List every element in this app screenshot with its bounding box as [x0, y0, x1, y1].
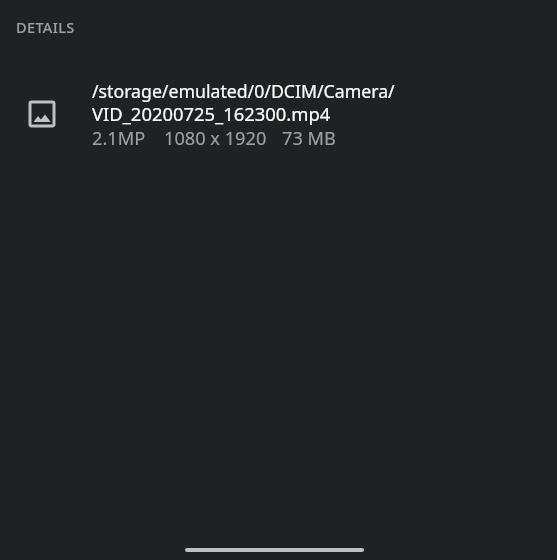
staticText: VID_20200725_162300.mp4: [92, 101, 331, 126]
button[interactable]: Image thumbnail: [0, 46, 557, 150]
staticText: 2.1MP: [92, 126, 146, 151]
staticText: 1080 x 1920: [164, 126, 267, 151]
staticText: /storage/emulated/0/DCIM/Camera/: [92, 79, 395, 103]
staticText: 73 MB: [282, 126, 336, 151]
other: Image thumbnail: [24, 96, 60, 132]
staticText: DETAILS: [16, 17, 75, 37]
